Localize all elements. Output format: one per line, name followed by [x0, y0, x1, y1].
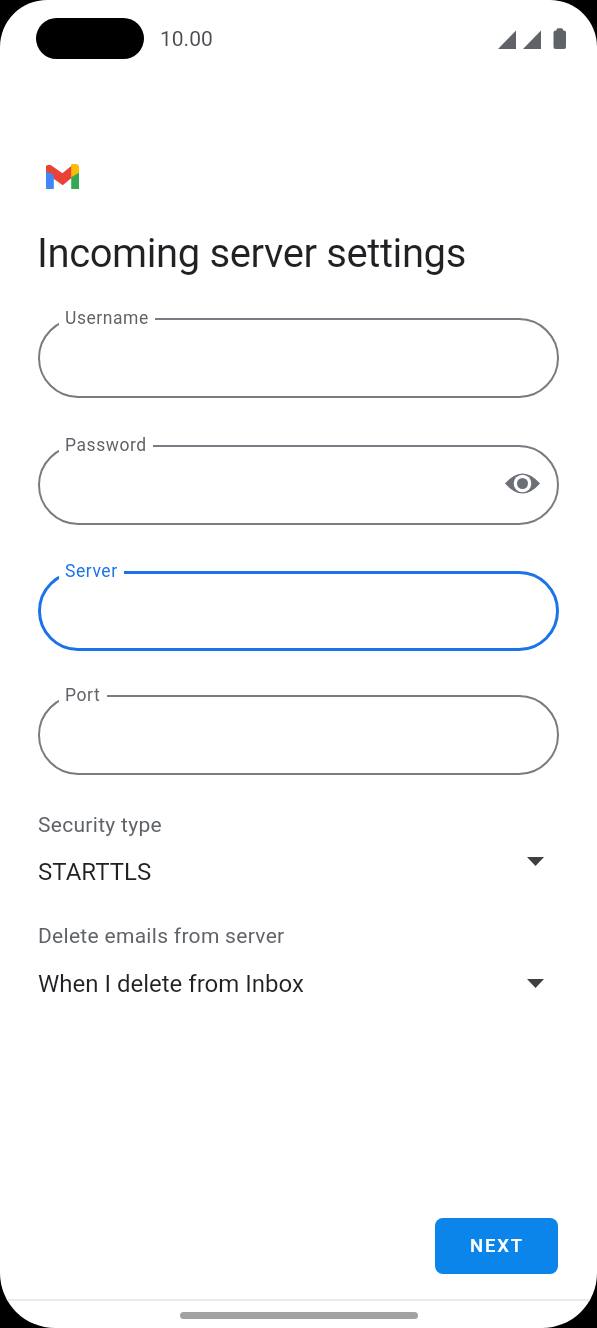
button[interactable]	[38, 695, 559, 775]
staticText: Incoming server settings	[37, 230, 466, 277]
staticText: Port	[65, 685, 101, 706]
staticText: Security type	[38, 813, 163, 838]
staticText: NEXT	[470, 1235, 524, 1257]
staticText: 10.00	[160, 27, 213, 52]
button[interactable]	[38, 571, 559, 651]
staticText: Delete emails from server	[38, 924, 285, 949]
button[interactable]: NEXT	[435, 1218, 558, 1274]
staticText: Password	[65, 435, 147, 456]
staticText: STARTTLS	[38, 858, 152, 886]
button[interactable]: STARTTLS	[38, 845, 559, 890]
staticText: Username	[65, 308, 149, 329]
button[interactable]	[38, 318, 559, 398]
staticText: When I delete from Inbox	[38, 970, 304, 998]
button[interactable]	[38, 445, 559, 525]
staticText: Server	[65, 561, 118, 582]
button[interactable]: When I delete from Inbox	[38, 960, 559, 1005]
